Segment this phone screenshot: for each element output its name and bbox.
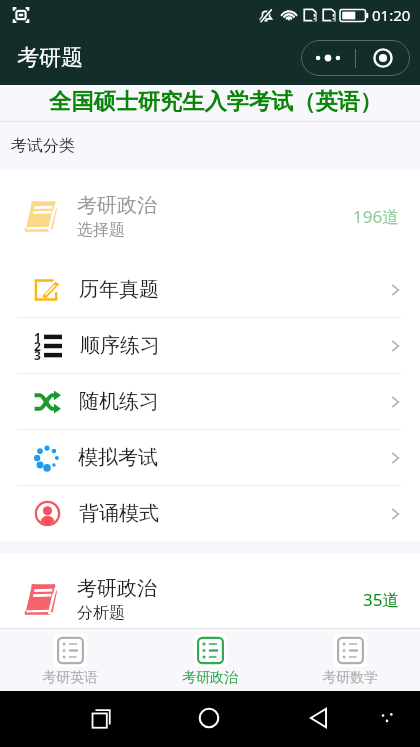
staticText: 模拟考试 xyxy=(78,445,158,470)
button[interactable]: 模拟考试 xyxy=(0,430,420,485)
button[interactable]: 背诵模式 xyxy=(0,486,420,541)
staticText: 3 xyxy=(34,347,41,363)
staticText: 随机练习 xyxy=(79,389,159,414)
button[interactable]: Menu xyxy=(363,694,411,742)
staticText: 01:20 xyxy=(372,5,411,25)
staticText: 考研英语 xyxy=(42,669,98,687)
button[interactable]: Back xyxy=(295,694,343,742)
button[interactable]: 历年真题 xyxy=(0,262,420,317)
staticText: 考研政治 xyxy=(182,669,238,687)
staticText: 历年真题 xyxy=(79,277,159,302)
button[interactable]: 随机练习 xyxy=(0,374,420,429)
button[interactable]: 考研英语 xyxy=(0,629,140,691)
button[interactable]: More xyxy=(301,40,355,76)
staticText: 选择题 xyxy=(77,220,125,240)
button[interactable]: 考研数学 xyxy=(280,629,420,691)
button[interactable]: 考研政治 xyxy=(0,553,420,645)
button[interactable]: 考研政治 xyxy=(140,629,280,691)
button[interactable]: 考研政治 xyxy=(0,170,420,262)
staticText: 2 xyxy=(34,338,41,354)
button[interactable]: Home xyxy=(185,694,233,742)
staticText: 考研政治 xyxy=(77,193,157,218)
staticText: 35道 xyxy=(363,588,400,611)
staticText: 背诵模式 xyxy=(79,501,159,526)
staticText: 考试分类 xyxy=(11,136,75,156)
staticText: 196道 xyxy=(353,205,400,228)
staticText: 考研政治 xyxy=(77,576,157,601)
button[interactable]: 1 xyxy=(0,318,420,373)
staticText: 1 xyxy=(34,329,41,345)
staticText: 考研题 xyxy=(17,44,83,72)
staticText: 考研数学 xyxy=(322,669,378,687)
staticText: 分析题 xyxy=(77,603,125,623)
button[interactable]: Close xyxy=(356,40,410,76)
staticText: 顺序练习 xyxy=(80,333,160,358)
button[interactable]: Recents xyxy=(76,694,124,742)
staticText: 全国硕士研究生入学考试（英语） xyxy=(49,88,382,116)
